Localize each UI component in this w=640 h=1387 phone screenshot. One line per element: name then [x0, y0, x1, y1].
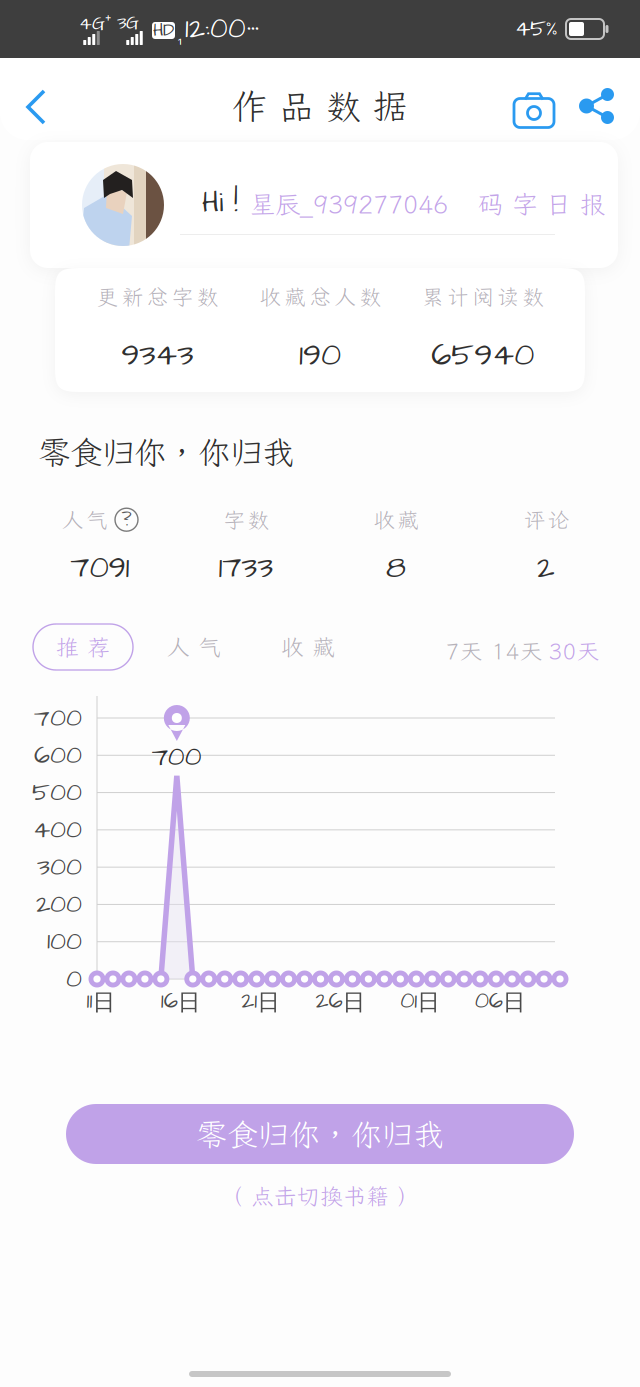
- staticText: 7091: [70, 547, 129, 589]
- button[interactable]: 收 藏: [272, 624, 344, 670]
- staticText: （ 点击切换书籍 ）: [220, 1181, 420, 1211]
- button[interactable]: 零食归你，你归我: [66, 1104, 574, 1164]
- button[interactable]: Share: [571, 76, 623, 136]
- staticText: 190: [299, 333, 341, 377]
- button[interactable]: Camera: [506, 74, 562, 138]
- staticText: 9343: [121, 333, 193, 377]
- staticText: 200: [36, 887, 82, 922]
- staticText: 11日: [86, 985, 115, 1017]
- staticText: 零食归你，你归我: [38, 431, 294, 473]
- staticText: 16日: [161, 985, 201, 1017]
- button[interactable]: 14天: [488, 629, 546, 673]
- staticText: 14天: [491, 636, 542, 666]
- staticText: 65940: [431, 333, 534, 377]
- staticText: 8: [386, 547, 406, 589]
- staticText: 21日: [241, 985, 280, 1017]
- button[interactable]: 人 气: [158, 624, 230, 670]
- staticText: ?: [121, 506, 131, 534]
- staticText: 30天: [548, 636, 599, 666]
- staticText: 零食归你，你归我: [196, 1114, 444, 1154]
- staticText: 累计阅读数: [422, 283, 543, 311]
- staticText: Hi !: [202, 183, 238, 222]
- staticText: 2: [537, 547, 555, 589]
- staticText: 01日: [400, 985, 440, 1017]
- staticText: 7天: [445, 636, 482, 666]
- staticText: 500: [32, 775, 82, 810]
- staticText: 推 荐: [56, 632, 110, 662]
- staticText: 0: [66, 961, 82, 997]
- staticText: 人气: [62, 506, 107, 534]
- button[interactable]: 30天: [545, 629, 603, 673]
- button[interactable]: Back: [4, 71, 68, 143]
- staticText: 3G: [117, 10, 139, 36]
- staticText: •••: [247, 14, 259, 42]
- staticText: 600: [34, 738, 82, 773]
- staticText: 收藏总人数: [259, 283, 380, 311]
- button[interactable]: （ 点击切换书籍 ）: [170, 1180, 470, 1212]
- staticText: 收 藏: [281, 632, 335, 662]
- staticText: HD: [153, 18, 174, 43]
- staticText: 300: [37, 849, 82, 885]
- staticText: ₁: [177, 27, 182, 47]
- staticText: 700: [34, 700, 82, 736]
- staticText: 码 字 日 报: [478, 187, 605, 221]
- staticText: 400: [33, 812, 82, 847]
- staticText: 4G⁺: [79, 9, 111, 37]
- staticText: 人 气: [167, 632, 221, 662]
- staticText: 作 品 数 据: [232, 83, 408, 129]
- staticText: 06日: [475, 985, 526, 1017]
- staticText: 字数: [223, 506, 268, 534]
- staticText: 700: [152, 738, 202, 776]
- staticText: 26日: [315, 985, 365, 1017]
- staticText: 45%: [515, 13, 558, 45]
- staticText: 100: [47, 924, 82, 959]
- staticText: 1733: [218, 547, 273, 589]
- staticText: 收藏: [373, 506, 418, 534]
- staticText: 12:00: [185, 9, 246, 48]
- staticText: 星辰_939277046: [250, 187, 448, 221]
- button[interactable]: 7天: [439, 629, 489, 673]
- staticText: 更新总字数: [97, 283, 218, 311]
- staticText: 评论: [523, 506, 568, 534]
- button[interactable]: 推 荐: [33, 624, 133, 670]
